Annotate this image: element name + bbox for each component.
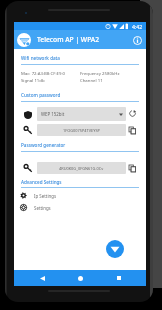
staticText: Settings xyxy=(34,205,51,211)
staticText: 1FOG0075P4TVEYSP xyxy=(63,128,100,133)
button[interactable]: Back xyxy=(31,270,53,286)
staticText: Channel 11 xyxy=(80,77,103,83)
button[interactable]: Settings xyxy=(18,202,128,213)
staticText: Wifi network data xyxy=(21,55,60,61)
button[interactable]: Recent apps xyxy=(108,270,130,286)
button[interactable]: Regenerate password xyxy=(127,108,138,119)
staticText: Ip Settings xyxy=(34,193,57,199)
staticText: 4:42 xyxy=(132,23,143,30)
button[interactable]: Copy password xyxy=(127,125,138,136)
staticText: Mac: 72:A3:B8:CF:E9:0 xyxy=(21,70,66,76)
button[interactable]: Copy generated password xyxy=(127,163,138,174)
staticText: Frequency 2580kHz xyxy=(80,70,120,76)
staticText: Password generator xyxy=(21,142,66,148)
staticText: 4RU0K0G_0FGN61G-0Cv xyxy=(59,166,104,171)
staticText: Advanced Settings xyxy=(21,179,62,185)
button[interactable]: 1FOG0075P4TVEYSP xyxy=(37,124,126,136)
button[interactable]: Home xyxy=(69,270,91,286)
staticText: WEP 152bit xyxy=(41,111,119,117)
staticText: Telecom AP | WPA2 xyxy=(37,35,129,44)
button[interactable]: Ip Settings xyxy=(18,190,128,201)
button[interactable]: 4RU0K0G_0FGN61G-0Cv xyxy=(37,162,126,174)
staticText: Signal 11db xyxy=(21,77,45,83)
button[interactable]: Access point xyxy=(17,33,31,47)
button[interactable]: Info xyxy=(129,32,145,48)
button[interactable]: Scan network xyxy=(106,240,124,258)
button[interactable]: WEP 152bit xyxy=(37,107,126,121)
staticText: Custom password xyxy=(21,92,61,98)
